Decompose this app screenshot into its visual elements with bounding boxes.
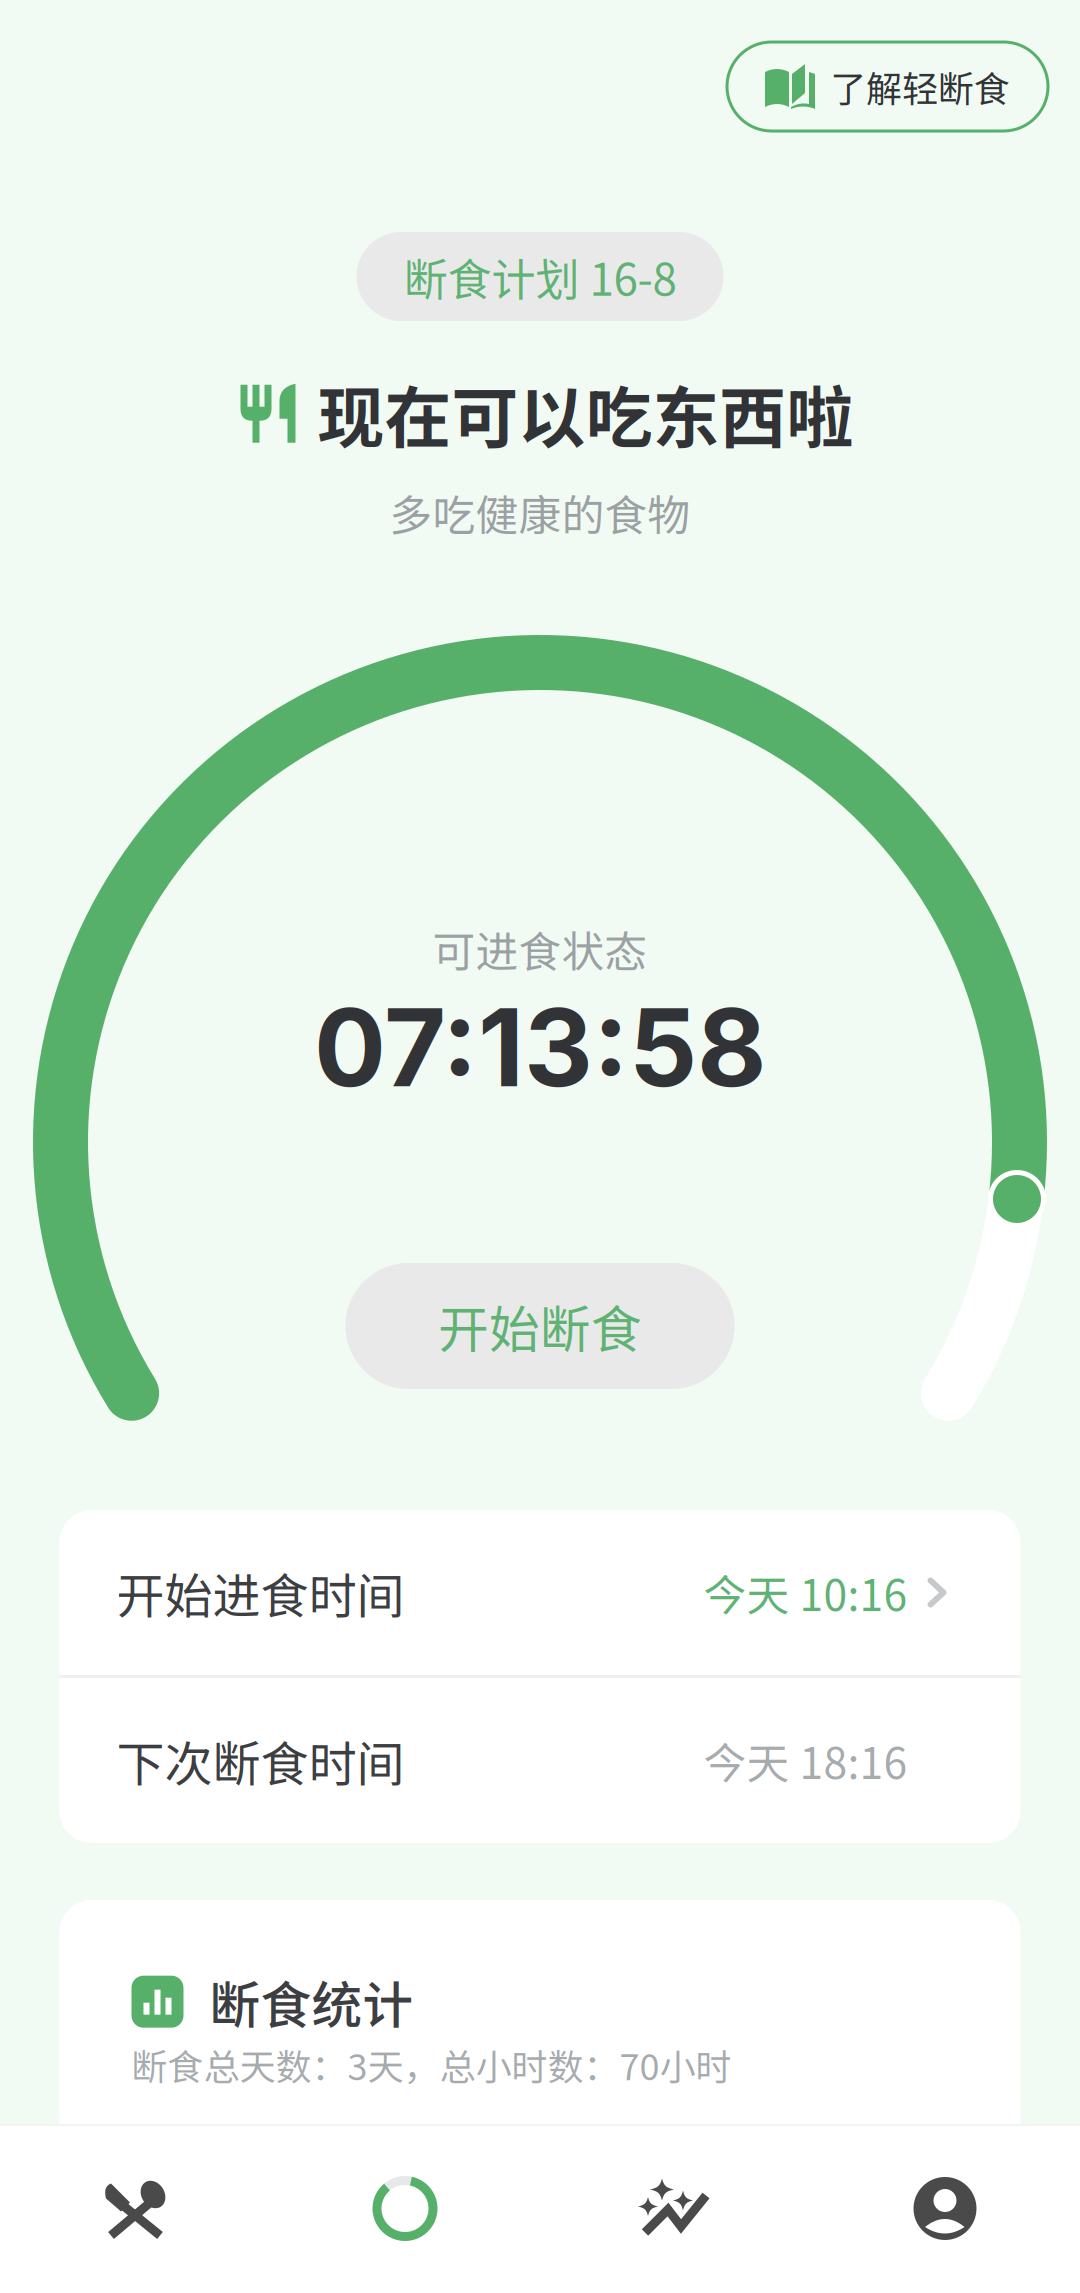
staticText: 今天 18:16 bbox=[703, 1730, 907, 1791]
button[interactable]: Insights bbox=[540, 2178, 810, 2238]
button[interactable]: Profile bbox=[810, 2175, 1080, 2241]
staticText: 07:13:58 bbox=[314, 983, 766, 1112]
staticText: 开始进食时间 bbox=[116, 1558, 404, 1627]
button[interactable]: 开始断食 bbox=[345, 1263, 734, 1389]
staticText: 可进食状态 bbox=[432, 918, 647, 980]
staticText: 了解轻断食 bbox=[830, 60, 1010, 112]
staticText: 断食计划 16-8 bbox=[403, 245, 676, 308]
staticText: 开始断食 bbox=[438, 1289, 642, 1363]
staticText: 下次断食时间 bbox=[116, 1726, 404, 1795]
staticText: 断食总天数：3天，总小时数：70小时 bbox=[131, 2038, 731, 2090]
button[interactable]: 开始进食时间 bbox=[59, 1510, 1020, 1675]
staticText: 现在可以吃东西啦 bbox=[317, 365, 853, 461]
button[interactable]: 下次断食时间 bbox=[59, 1678, 1020, 1843]
button[interactable]: 断食计划 16-8 bbox=[356, 232, 723, 321]
staticText: 今天 10:16 bbox=[703, 1562, 907, 1623]
button[interactable]: Meals bbox=[0, 2177, 270, 2239]
staticText: 断食统计 bbox=[209, 1965, 413, 2038]
button[interactable]: Fasting bbox=[270, 2175, 540, 2241]
button[interactable]: 了解轻断食 bbox=[727, 42, 1048, 131]
staticText: 多吃健康的食物 bbox=[389, 481, 690, 543]
